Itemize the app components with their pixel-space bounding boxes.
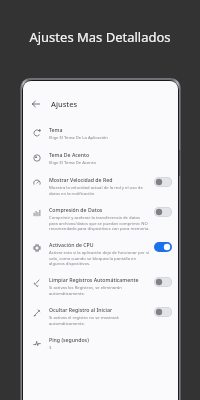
button[interactable]: Compresión de Datos [23,201,178,236]
staticText: Tema De Acento [49,151,90,158]
button[interactable]: Ocultar Registro al Iniciar [23,301,178,331]
button[interactable]: Activación de CPU [23,236,178,271]
staticText: Si activas los Registros, se eliminarán … [49,285,150,296]
button[interactable]: Compresión de Datos toggle [154,207,172,217]
staticText: Comprimir y acelerar la transferencia de… [49,215,150,231]
staticText: Compresión de Datos [49,206,103,213]
button[interactable]: Mostrar Velocidad de Red toggle [154,177,172,187]
staticText: 3 [49,345,52,351]
button[interactable]: Tema De Acento [23,146,178,171]
staticText: Elige El Tema De Acento [49,160,96,166]
button[interactable]: Back [29,97,43,111]
staticText: Limpiar Registros Automáticamente [49,276,139,283]
button[interactable]: Ping (segundos) [23,331,178,356]
button[interactable]: Limpiar Registros Automáticamente [23,271,178,301]
staticText: Ping (segundos) [49,336,89,343]
staticText: Muestra la velocidad actual de la red y … [49,185,150,196]
staticText: Si activas el registro no se mostrará au… [49,315,150,326]
staticText: Elige El Tema De La Aplicación [49,135,108,141]
button[interactable]: Ocultar Registro al Iniciar toggle [154,307,172,317]
button[interactable]: Mostrar Velocidad de Red [23,171,178,201]
staticText: Mostrar Velocidad de Red [49,176,113,183]
staticText: Ajustes Mas Detallados [29,28,171,46]
staticText: Ajustes [51,99,78,109]
button[interactable]: Limpiar Registros Automáticamente toggle [154,277,172,287]
staticText: Activar esto si la aplicación deja de fu… [49,250,150,266]
button[interactable]: Tema [23,121,178,146]
staticText: Activación de CPU [49,241,94,248]
staticText: Ocultar Registro al Iniciar [49,306,113,313]
staticText: Tema [49,126,63,133]
button[interactable]: Activación de CPU toggle [154,242,172,252]
